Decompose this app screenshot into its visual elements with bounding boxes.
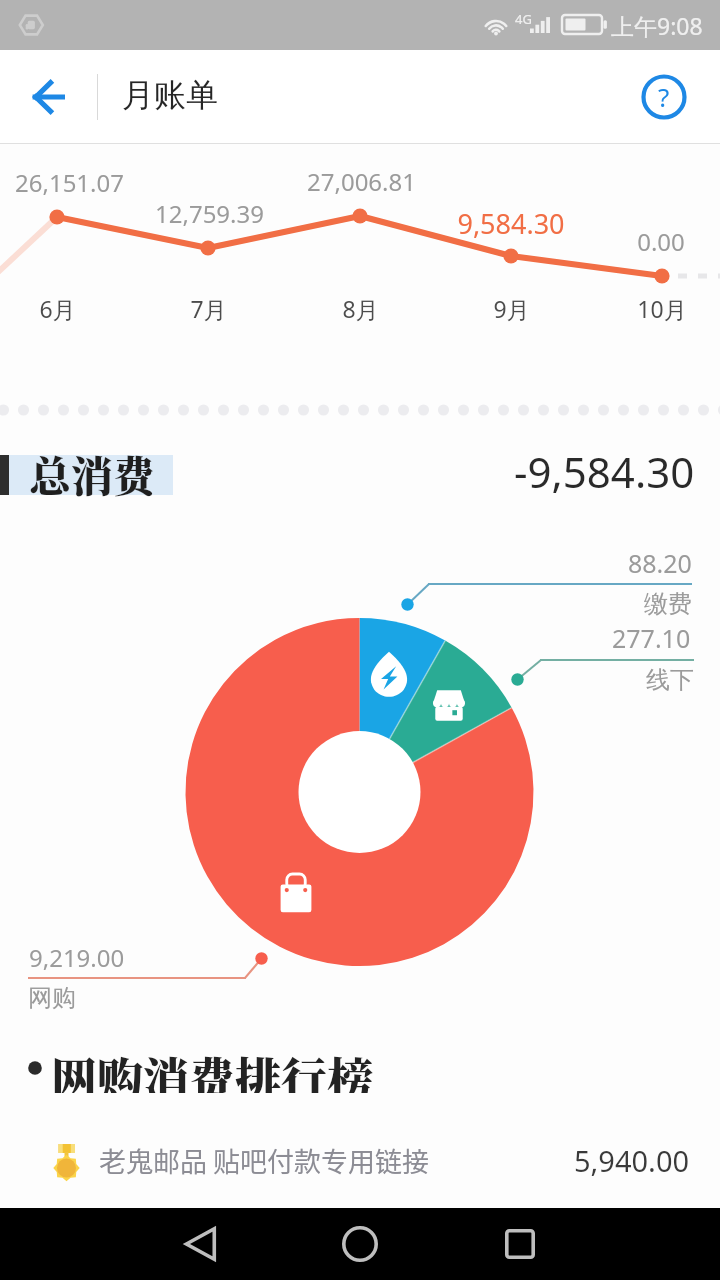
button[interactable]: Back — [170, 1214, 230, 1274]
staticText: 网购消费排行榜 — [51, 1043, 373, 1093]
staticText: 缴费 — [644, 589, 692, 619]
staticText: -9,584.30 — [514, 443, 695, 500]
staticText: 网购 — [28, 983, 76, 1013]
staticText: 26,151.07 — [15, 166, 124, 199]
staticText: 总消费 — [29, 444, 156, 504]
staticText: 8月 — [342, 293, 379, 324]
button[interactable]: 老鬼邮品 贴吧付款专用链接 — [0, 1128, 720, 1194]
staticText: 9,584.30 — [457, 205, 565, 242]
staticText: 6月 — [39, 293, 76, 324]
button[interactable]: Back — [22, 71, 74, 123]
staticText: 线下 — [646, 665, 694, 695]
staticText: 老鬼邮品 贴吧付款专用链接 — [99, 1141, 430, 1180]
staticText: 12,759.39 — [155, 197, 264, 230]
staticText: 27,006.81 — [307, 165, 416, 198]
button[interactable]: Home — [330, 1214, 390, 1274]
staticText: 5,940.00 — [574, 1141, 690, 1180]
staticText: 上午9:08 — [611, 10, 703, 41]
staticText: 月账单 — [122, 75, 218, 115]
staticText: 4G — [515, 10, 532, 28]
staticText: 88.20 — [628, 546, 692, 580]
staticText: 277.10 — [612, 621, 691, 655]
button[interactable]: Recents — [490, 1214, 550, 1274]
button[interactable]: Help — [638, 71, 690, 123]
staticText: 10月 — [637, 293, 687, 324]
staticText: 9月 — [493, 293, 530, 324]
staticText: 9,219.00 — [29, 941, 125, 974]
staticText: 7月 — [190, 293, 227, 324]
staticText: ? — [658, 79, 670, 114]
staticText: 0.00 — [637, 225, 685, 258]
